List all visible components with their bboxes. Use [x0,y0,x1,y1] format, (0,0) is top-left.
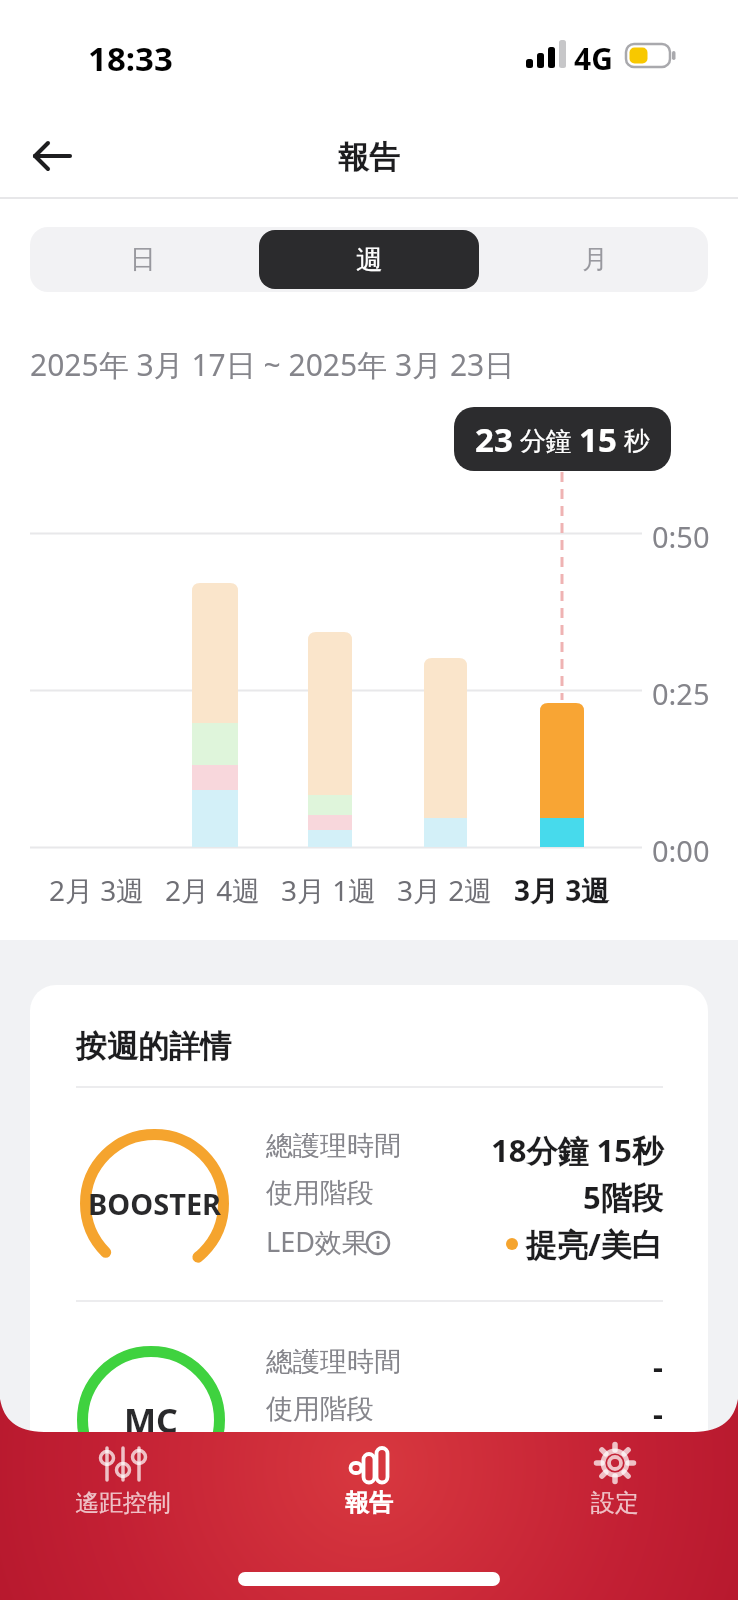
staticText: 18分鐘 15秒 [491,1129,663,1171]
staticText: 日 [130,243,156,276]
staticText: 2月 3週 [49,871,145,909]
staticText: 設定 [591,1488,639,1518]
button[interactable]: 週 [259,230,479,289]
staticText: 0:00 [652,831,710,870]
staticText: 15 [579,417,617,462]
staticText: 週 [356,243,383,277]
staticText: 2025年 3月 17日 ~ 2025年 3月 23日 [30,344,515,385]
button[interactable]: 遙距控制 [0,1446,246,1566]
staticText: 總護理時間 [266,1129,401,1163]
staticText: 分鐘 [513,422,579,458]
staticText: 2月 4週 [165,871,261,909]
staticText: 月 [582,243,608,276]
staticText: 使用階段 [266,1392,374,1426]
button[interactable]: 設定 [492,1446,738,1566]
staticText: 使用階段 [266,1176,374,1210]
staticText: 0:50 [652,517,710,556]
button[interactable] [24,130,80,182]
staticText: 提亮/美白 [526,1223,663,1265]
button[interactable]: 報告 [246,1446,492,1566]
staticText: 秒 [617,422,650,458]
staticText: MC [124,1397,178,1443]
staticText: 18:33 [88,36,173,81]
staticText: 報告 [338,138,400,177]
staticText: BOOSTER [88,1184,222,1223]
staticText: 3月 2週 [397,871,493,909]
staticText: 3月 3週 [514,871,610,909]
staticText: 5階段 [583,1176,663,1218]
staticText: 23 [475,417,513,462]
button[interactable]: 月 [482,227,708,292]
staticText: - [653,1345,663,1387]
staticText: 4G [574,38,613,79]
staticText: LED效果 [266,1223,369,1260]
staticText: 3月 1週 [281,871,377,909]
staticText: 0:25 [652,674,710,713]
staticText: 報告 [345,1488,393,1518]
staticText: - [653,1392,663,1434]
staticText: 總護理時間 [266,1345,401,1379]
staticText: 按週的詳情 [76,1027,231,1066]
staticText: 遙距控制 [75,1488,171,1518]
button[interactable]: 日 [30,227,256,292]
